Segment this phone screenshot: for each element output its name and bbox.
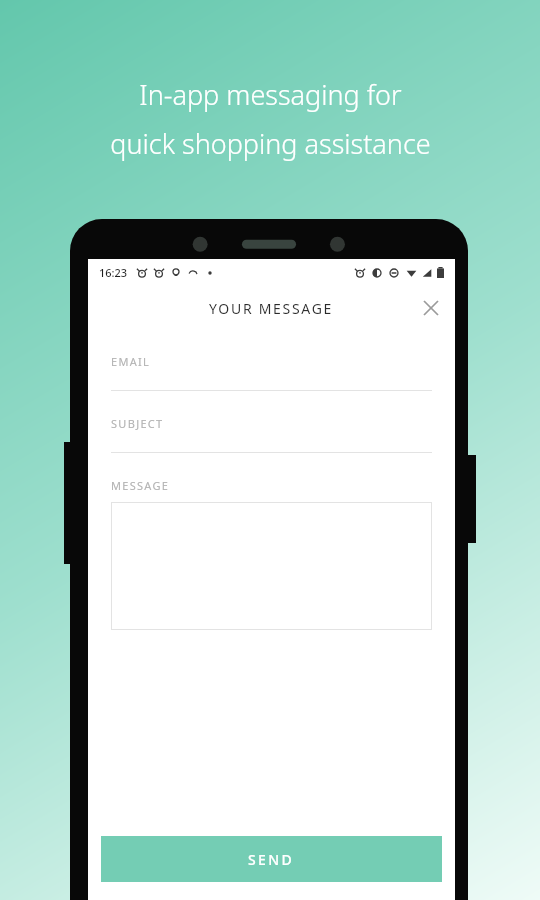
staticText: quick shopping assistance <box>110 125 431 162</box>
staticText: EMAIL <box>111 354 151 369</box>
staticText: MESSAGE <box>111 478 170 493</box>
staticText: SEND <box>248 850 295 869</box>
button[interactable]: EMAIL <box>111 354 432 391</box>
staticText: 16:23 <box>99 265 128 280</box>
staticText: YOUR MESSAGE <box>209 299 334 318</box>
button[interactable]: Close <box>413 290 449 326</box>
button[interactable]: SUBJECT <box>111 416 432 453</box>
button[interactable]: MESSAGE <box>111 478 432 630</box>
staticText: In-app messaging for <box>139 76 402 113</box>
button[interactable]: SEND <box>101 836 442 882</box>
staticText: SUBJECT <box>111 416 164 431</box>
